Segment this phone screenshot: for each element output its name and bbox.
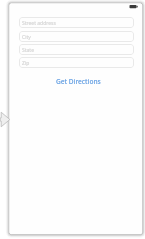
staticText: Street address	[22, 20, 56, 27]
button[interactable]: Expand panel	[0, 111, 11, 128]
button[interactable]: City	[19, 31, 134, 42]
other: Battery	[129, 4, 138, 9]
button[interactable]: State	[19, 44, 134, 55]
staticText: Get Directions	[56, 77, 101, 86]
button[interactable]: Get Directions	[53, 74, 104, 89]
button[interactable]: Zip	[19, 57, 134, 68]
staticText: Zip	[22, 60, 30, 67]
button[interactable]: Street address	[19, 17, 134, 28]
staticText: City	[22, 34, 31, 41]
staticText: State	[22, 47, 34, 54]
